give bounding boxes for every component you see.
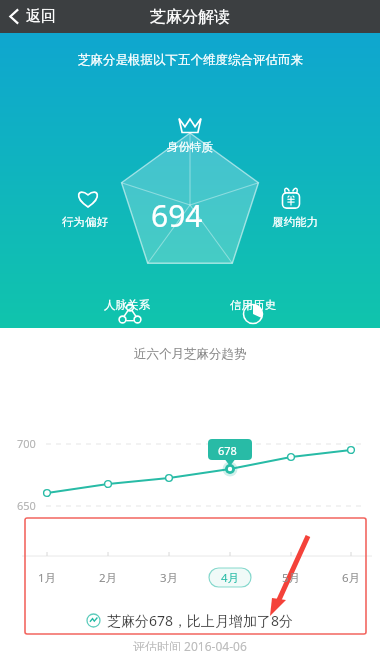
staticText: 身份特质 — [158, 140, 222, 154]
staticText: 700 — [17, 436, 36, 451]
staticText: 信用历史 — [221, 298, 285, 312]
staticText: 1月 — [38, 570, 57, 586]
staticText: 4月 — [221, 570, 240, 586]
button[interactable]: 5月 — [270, 568, 312, 587]
staticText: 2月 — [99, 570, 118, 586]
staticText: 3月 — [160, 570, 179, 586]
button[interactable]: 4月 — [209, 568, 251, 587]
staticText: 履约能力 — [263, 215, 327, 229]
staticText: 评估时间 2016-04-06 — [133, 638, 247, 651]
button[interactable]: 1月 — [26, 568, 68, 587]
staticText: 近六个月芝麻分趋势 — [134, 346, 247, 362]
staticText: 芝麻分678，比上月增加了8分 — [107, 611, 294, 630]
staticText: 678 — [218, 443, 237, 458]
staticText: 5月 — [282, 570, 301, 586]
staticText: 6月 — [342, 570, 361, 586]
staticText: 返回 — [26, 7, 56, 26]
button[interactable]: 3月 — [148, 568, 190, 587]
staticText: 650 — [17, 498, 36, 513]
button[interactable]: 返回 — [0, 0, 66, 33]
staticText: 芝麻分是根据以下五个维度综合评估而来 — [78, 52, 303, 68]
button[interactable]: 芝麻分678，比上月增加了8分 — [0, 607, 380, 633]
staticText: 694 — [151, 195, 203, 236]
button[interactable]: 2月 — [87, 568, 129, 587]
staticText: 人脉关系 — [95, 298, 159, 312]
staticText: 行为偏好 — [53, 215, 117, 229]
button[interactable]: 6月 — [330, 568, 372, 587]
staticText: 芝麻分解读 — [150, 7, 230, 27]
